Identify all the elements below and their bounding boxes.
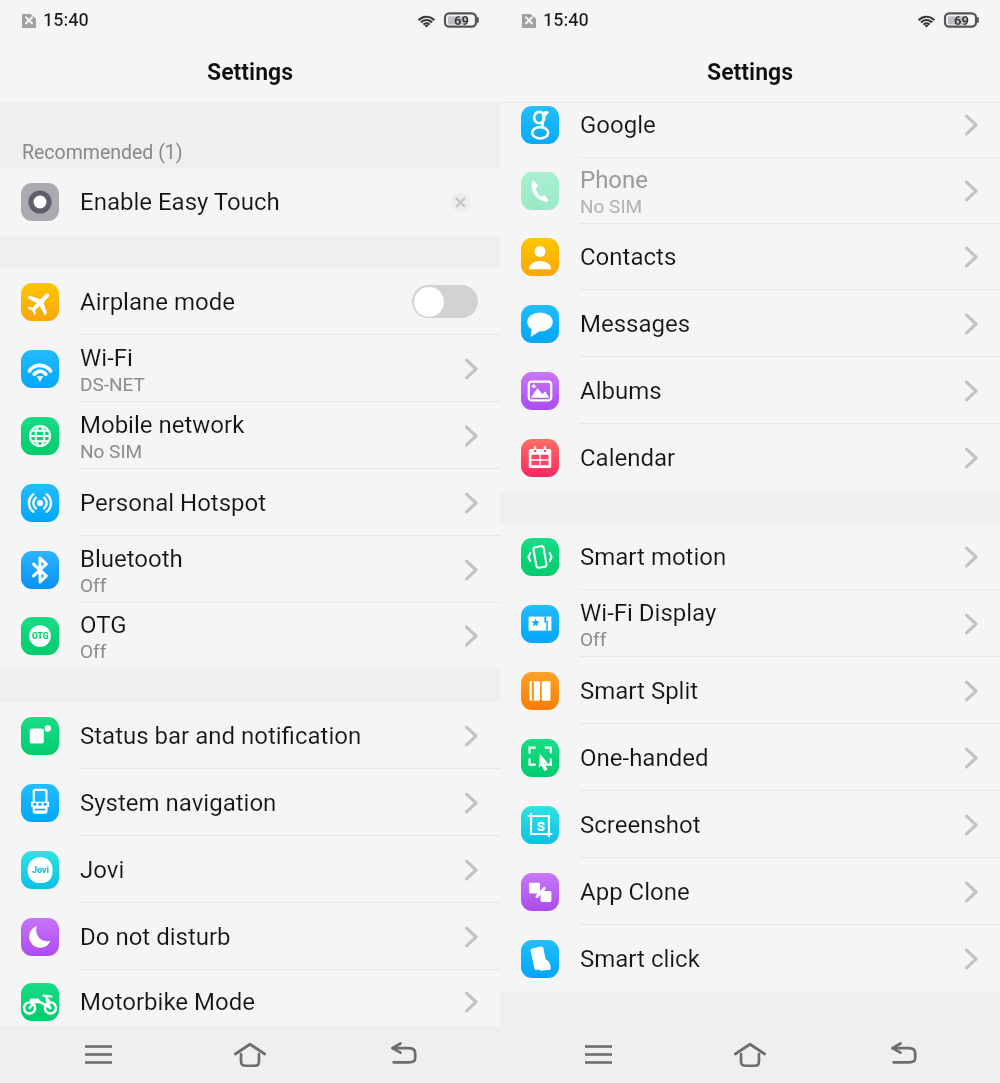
staticText: Wi-Fi [80, 344, 133, 372]
staticText: Wi-Fi Display [580, 599, 717, 627]
staticText: Mobile network [80, 411, 245, 439]
staticText: Settings [207, 59, 294, 86]
button[interactable]: OTG [0, 603, 500, 669]
staticText: Enable Easy Touch [80, 188, 280, 216]
button[interactable]: Dismiss recommendation [443, 185, 477, 219]
button[interactable]: Messages [500, 290, 1000, 357]
button[interactable]: System navigation [0, 769, 500, 836]
staticText: No SIM [80, 440, 143, 462]
staticText: Personal Hotspot [80, 489, 267, 517]
button[interactable]: Recent apps [68, 1026, 128, 1083]
button[interactable]: Phone [500, 158, 1000, 224]
staticText: Screenshot [580, 811, 701, 839]
button[interactable]: Enable Easy Touch [0, 168, 500, 236]
button[interactable]: Home [720, 1026, 780, 1083]
staticText: 69 [454, 13, 469, 28]
button[interactable]: Recent apps [568, 1026, 628, 1083]
staticText: Bluetooth [80, 545, 183, 573]
staticText: Contacts [580, 243, 677, 271]
staticText: No SIM [580, 195, 643, 217]
staticText: Off [80, 640, 107, 662]
button[interactable]: Airplane mode off [412, 285, 478, 318]
button[interactable]: Wi-Fi Display [500, 590, 1000, 657]
staticText: 15:40 [543, 9, 589, 30]
staticText: Jovi [80, 856, 125, 884]
staticText: Recommended (1) [22, 141, 183, 164]
staticText: Status bar and notification [80, 722, 362, 750]
button[interactable]: S [500, 791, 1000, 858]
staticText: One-handed [580, 744, 709, 772]
button[interactable]: Wi-Fi [0, 335, 500, 402]
button[interactable]: Bluetooth [0, 536, 500, 603]
button[interactable]: Jovi [0, 836, 500, 903]
button[interactable]: Motorbike Mode [0, 970, 500, 1026]
staticText: Phone [580, 166, 649, 194]
button[interactable]: Back [872, 1026, 932, 1083]
staticText: System navigation [80, 789, 277, 817]
staticText: 69 [954, 13, 969, 28]
button[interactable]: Albums [500, 357, 1000, 424]
button[interactable]: Google [500, 103, 1000, 158]
staticText: Google [580, 111, 656, 139]
staticText: Airplane mode [80, 288, 235, 316]
button[interactable]: Contacts [500, 224, 1000, 290]
staticText: Off [80, 574, 107, 596]
button[interactable]: Calendar [500, 424, 1000, 491]
staticText: OTG [80, 611, 127, 639]
staticText: Smart Split [580, 677, 699, 705]
button[interactable]: Status bar and notification [0, 702, 500, 769]
staticText: S [537, 819, 545, 834]
staticText: Jovi [32, 865, 49, 876]
staticText: Albums [580, 377, 662, 405]
button[interactable]: One-handed [500, 724, 1000, 791]
staticText: Smart motion [580, 543, 727, 571]
button[interactable]: Smart Split [500, 657, 1000, 724]
staticText: Off [580, 628, 607, 650]
staticText: Calendar [580, 444, 676, 472]
staticText: 15:40 [43, 9, 89, 30]
staticText: Smart click [580, 945, 700, 973]
button[interactable]: Do not disturb [0, 903, 500, 970]
button[interactable]: Smart motion [500, 523, 1000, 590]
button[interactable]: App Clone [500, 858, 1000, 925]
button[interactable]: Mobile network [0, 402, 500, 469]
staticText: Do not disturb [80, 923, 231, 951]
staticText: DS-NET [80, 373, 145, 395]
button[interactable]: Smart click [500, 925, 1000, 992]
button[interactable]: Home [220, 1026, 280, 1083]
button[interactable]: Back [372, 1026, 432, 1083]
staticText: Motorbike Mode [80, 988, 255, 1016]
button[interactable]: Personal Hotspot [0, 469, 500, 536]
staticText: Messages [580, 310, 691, 338]
button[interactable]: Airplane mode [0, 268, 500, 335]
staticText: OTG [32, 631, 49, 641]
staticText: Settings [707, 59, 794, 86]
staticText: App Clone [580, 878, 690, 906]
